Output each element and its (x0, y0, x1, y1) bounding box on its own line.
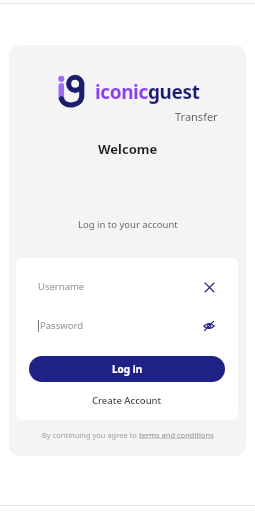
staticText: guest (148, 79, 200, 105)
button[interactable]: Clear username (201, 279, 217, 295)
button[interactable]: terms and conditions (139, 430, 214, 440)
staticText: terms and conditions (139, 430, 214, 440)
button[interactable]: Username (29, 273, 225, 300)
staticText: Log in (112, 362, 143, 376)
button[interactable]: Create Account (86, 392, 168, 409)
staticText: Password (40, 319, 83, 332)
button[interactable]: Log in (29, 356, 225, 382)
staticText: By continuing you agree to (42, 430, 139, 440)
staticText: Log in to your account (78, 218, 178, 231)
button[interactable]: Show password (201, 318, 217, 334)
staticText: Username (38, 280, 85, 293)
staticText: Welcome (98, 140, 158, 158)
staticText: iconic (95, 79, 148, 105)
staticText: Create Account (92, 394, 162, 407)
staticText: Transfer (175, 109, 218, 124)
button[interactable]: Password (29, 312, 225, 339)
